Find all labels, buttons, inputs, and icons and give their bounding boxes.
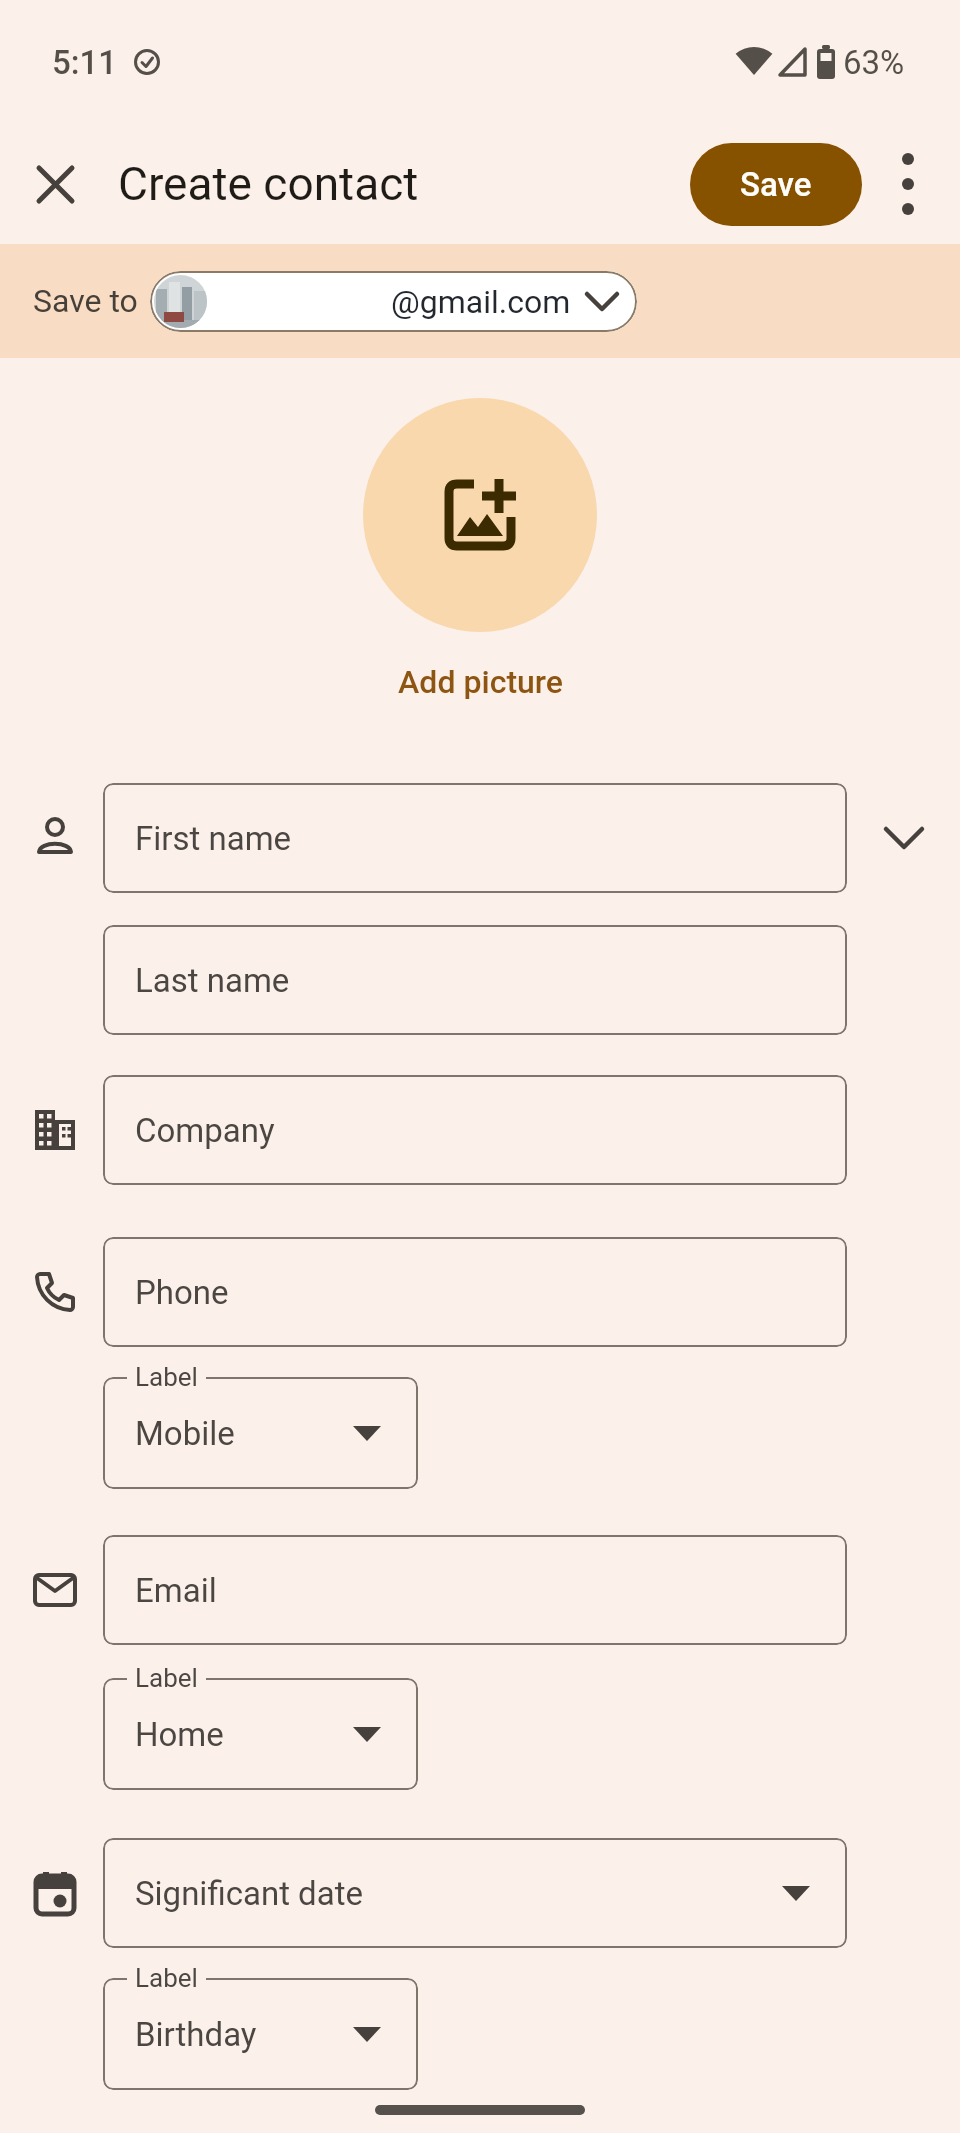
staticText: @gmail.com xyxy=(391,283,571,321)
staticText: Home xyxy=(135,1715,224,1754)
staticText: Last name xyxy=(135,961,290,1000)
staticText: Email xyxy=(135,1571,217,1610)
staticText: 63% xyxy=(843,43,905,82)
button[interactable]: Home xyxy=(103,1678,418,1790)
staticText: Save xyxy=(740,165,812,204)
button[interactable]: Last name xyxy=(103,925,847,1035)
staticText: Phone xyxy=(135,1273,229,1312)
staticText: Significant date xyxy=(135,1874,363,1913)
staticText: First name xyxy=(135,819,292,858)
button[interactable]: Company xyxy=(103,1075,847,1185)
button[interactable] xyxy=(886,162,930,206)
button[interactable] xyxy=(363,398,597,632)
staticText: 5:11 xyxy=(52,43,118,82)
staticText: Label xyxy=(135,1362,198,1392)
staticText: Label xyxy=(135,1963,198,1993)
staticText: Mobile xyxy=(135,1414,235,1453)
staticText: Birthday xyxy=(135,2015,257,2054)
button[interactable]: Add picture xyxy=(398,663,563,701)
button[interactable]: Birthday xyxy=(103,1978,418,2090)
button[interactable]: Significant date xyxy=(103,1838,847,1948)
button[interactable]: @gmail.com xyxy=(150,271,637,332)
staticText: Create contact xyxy=(118,157,419,211)
button[interactable] xyxy=(33,162,77,206)
staticText: Save to xyxy=(33,282,138,320)
button[interactable]: Email xyxy=(103,1535,847,1645)
staticText: Company xyxy=(135,1111,275,1150)
button[interactable]: First name xyxy=(103,783,847,893)
staticText: Label xyxy=(135,1663,198,1693)
button[interactable]: Mobile xyxy=(103,1377,418,1489)
button[interactable]: Save xyxy=(690,143,862,226)
button[interactable]: Phone xyxy=(103,1237,847,1347)
